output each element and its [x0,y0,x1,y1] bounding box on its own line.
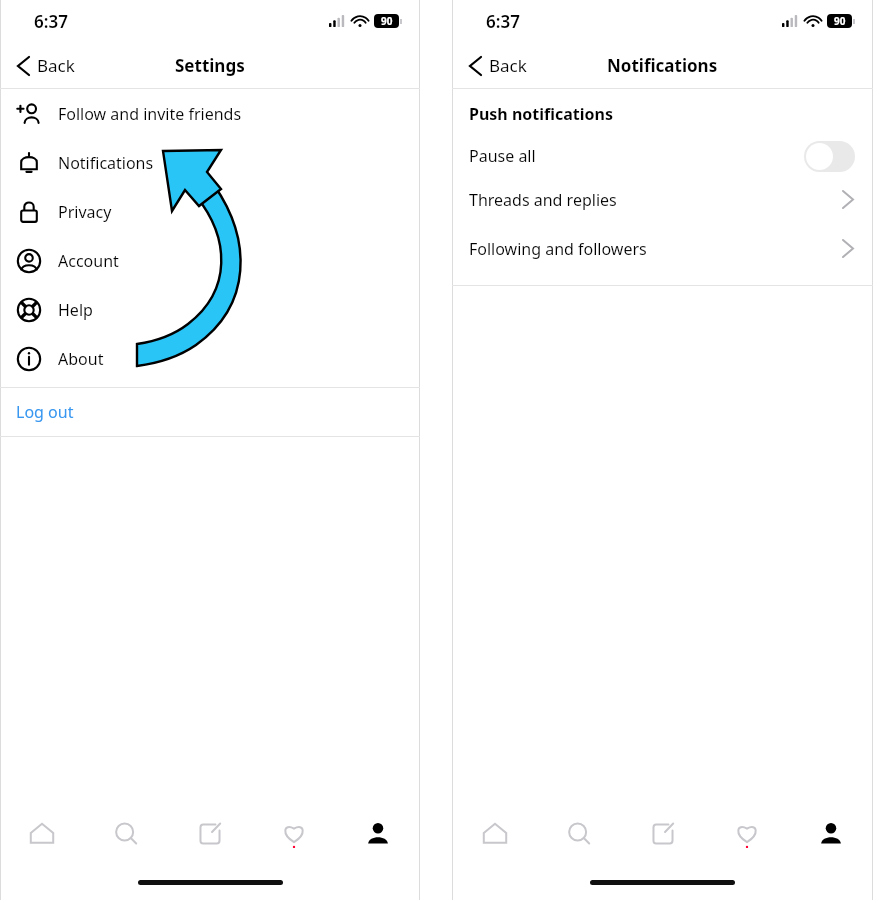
staticText: Notifications [607,54,718,77]
staticText: Push notifications [469,103,614,125]
staticText: 90 [381,14,393,28]
staticText: Log out [16,401,74,423]
button[interactable]: Follow and invite friends [0,89,420,138]
staticText: Notifications [58,152,154,174]
button[interactable]: Home [452,800,537,868]
staticText: Back [489,54,527,77]
button[interactable]: Create [621,800,705,868]
button[interactable]: Profile [336,800,420,868]
button[interactable]: About [0,334,420,383]
button[interactable]: Home [0,800,84,868]
button[interactable]: Search [537,800,621,868]
staticText: Pause all [469,145,536,167]
staticText: Back [37,54,75,77]
staticText: 6:37 [34,10,68,33]
button[interactable]: Back [462,48,535,83]
button[interactable]: Privacy [0,187,420,236]
button[interactable]: Create [168,800,252,868]
button[interactable]: Threads and replies [452,175,873,224]
staticText: Follow and invite friends [58,103,242,125]
button[interactable]: Notifications [0,138,420,187]
staticText: Threads and replies [469,189,617,211]
staticText: Following and followers [469,238,647,260]
staticText: 6:37 [486,10,520,33]
button[interactable]: Log out [0,388,420,436]
button[interactable]: Activity [252,800,336,868]
staticText: Privacy [58,201,112,223]
button[interactable]: Following and followers [452,224,873,273]
staticText: Settings [175,54,245,77]
button[interactable]: Back [10,48,83,83]
button[interactable]: Pause all [452,137,873,175]
button[interactable]: Account [0,236,420,285]
staticText: About [58,348,104,370]
staticText: Help [58,299,93,321]
button[interactable]: Search [84,800,168,868]
staticText: Account [58,250,119,272]
staticText: 90 [834,14,846,28]
button[interactable]: Help [0,285,420,334]
button[interactable]: Profile [789,800,873,868]
button[interactable]: Activity [705,800,789,868]
